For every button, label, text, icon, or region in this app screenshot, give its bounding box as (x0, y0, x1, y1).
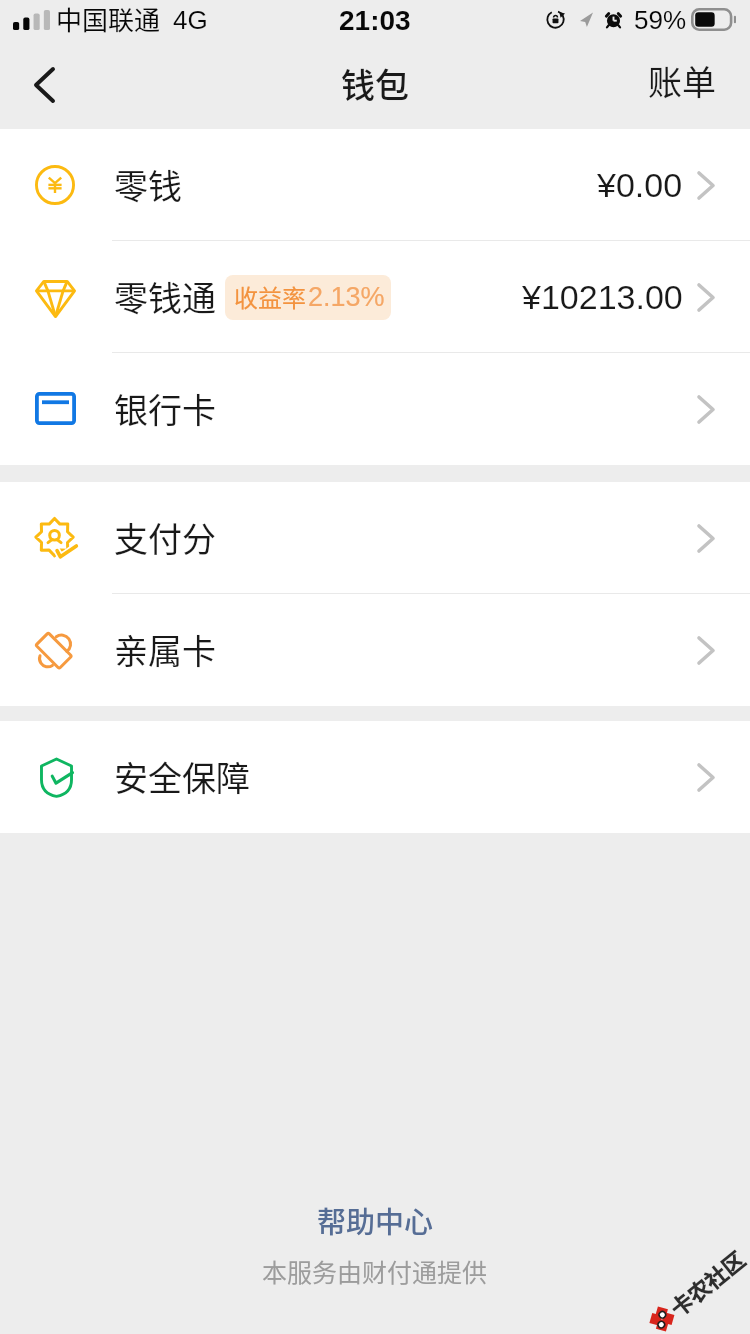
button[interactable]: 安全保障 (0, 721, 750, 833)
button[interactable]: 银行卡 (0, 353, 750, 465)
staticText: 支付分 (114, 513, 216, 562)
staticText: 21:03 (339, 5, 411, 36)
staticText: 4G (173, 5, 208, 34)
button[interactable]: 支付分 (0, 482, 750, 594)
button[interactable]: 帮助中心 (293, 1188, 458, 1246)
staticText: 帮助中心 (317, 1199, 434, 1241)
staticText: 银行卡 (114, 384, 216, 433)
staticText: 钱包 (341, 59, 409, 108)
staticText: 59% (634, 5, 687, 34)
button[interactable]: 亲属卡 (0, 594, 750, 706)
staticText: ¥10213.00 (522, 278, 683, 316)
button[interactable]: 账单 (614, 50, 750, 129)
button[interactable]: 零钱通 (0, 241, 750, 353)
button[interactable]: 零钱 (0, 129, 750, 241)
staticText: ¥0.00 (597, 166, 683, 204)
staticText: 2.13% (308, 282, 385, 312)
staticText: 亲属卡 (114, 625, 216, 674)
staticText: 零钱 (114, 160, 182, 209)
staticText: 安全保障 (114, 752, 250, 801)
staticText: 账单 (648, 56, 716, 105)
staticText: 收益率 (234, 279, 306, 314)
button[interactable]: Back (0, 50, 86, 129)
staticText: 本服务由财付通提供 (262, 1253, 488, 1289)
staticText: 卡农社区 (662, 1242, 750, 1323)
staticText: 中国联通 (56, 0, 161, 38)
staticText: 零钱通 (114, 272, 216, 321)
